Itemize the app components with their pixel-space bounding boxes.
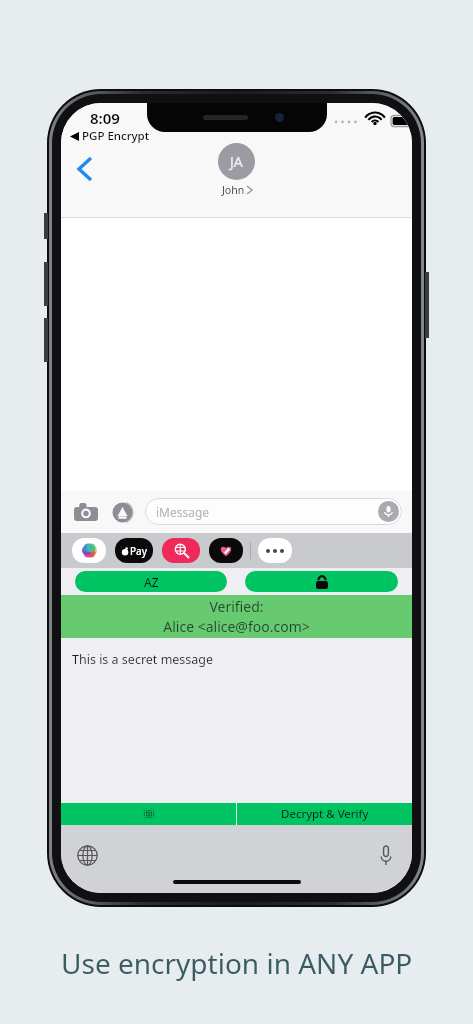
button[interactable]: Decrypt & Verify	[237, 803, 412, 825]
button[interactable]: JA	[218, 143, 255, 197]
button[interactable]: Globe	[61, 803, 236, 825]
staticText: Alice <alice@foo.com>	[163, 617, 310, 636]
staticText: Pay	[130, 544, 148, 558]
button[interactable]: Images	[162, 538, 200, 563]
button[interactable]: Back	[67, 151, 103, 187]
staticText: Decrypt & Verify	[281, 806, 369, 822]
button[interactable]: PGP Encrypt	[70, 128, 150, 144]
staticText: Verified:	[209, 597, 264, 616]
button[interactable]: Dictate	[378, 501, 399, 522]
button[interactable]: AZ	[75, 571, 227, 592]
button[interactable]: Camera	[71, 497, 101, 527]
staticText: 8:09	[90, 108, 120, 128]
button[interactable]: App Store	[107, 497, 137, 527]
staticText: PGP Encrypt	[82, 128, 150, 144]
button[interactable]: Digital Touch	[209, 538, 243, 563]
button[interactable]: Change keyboard	[73, 841, 101, 869]
staticText: John	[222, 183, 245, 197]
button[interactable]: Encrypt	[245, 571, 398, 592]
button[interactable]: Apple Pay	[115, 538, 153, 563]
button[interactable]: Photos	[72, 538, 106, 563]
button[interactable]: More apps	[258, 538, 292, 563]
staticText: AZ	[144, 574, 159, 590]
button[interactable]: iMessage	[145, 498, 402, 525]
staticText: JA	[230, 152, 243, 171]
staticText: This is a secret message	[72, 651, 214, 668]
staticText: iMessage	[156, 504, 210, 520]
button[interactable]: Dictation	[372, 841, 400, 869]
staticText: Use encryption in ANY APP	[61, 944, 413, 982]
